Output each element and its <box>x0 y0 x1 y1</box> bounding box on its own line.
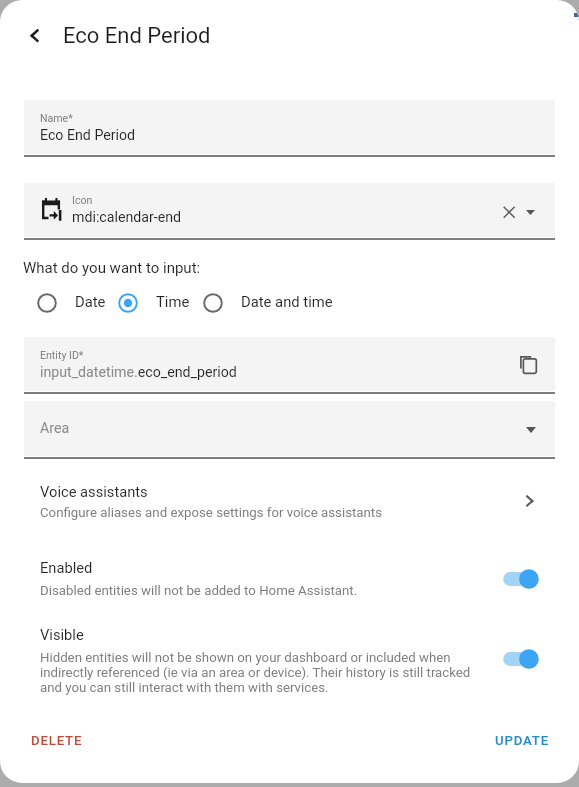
staticText: Disabled entities will not be added to H… <box>40 583 358 599</box>
button[interactable]: Back <box>18 20 46 48</box>
button[interactable] <box>24 183 555 237</box>
staticText: DELETE <box>31 733 83 748</box>
button[interactable]: Toggle Enabled <box>500 566 542 592</box>
staticText: What do you want to input: <box>23 259 201 277</box>
staticText: Time <box>156 293 190 310</box>
button[interactable] <box>0 618 579 698</box>
button[interactable]: Toggle Visible <box>500 646 542 672</box>
staticText: Name* <box>40 112 73 124</box>
staticText: indirectly referenced (ie via an area or… <box>40 665 471 681</box>
button[interactable]: Clear icon <box>495 199 523 227</box>
button[interactable]: Copy entity ID <box>506 346 538 378</box>
staticText: Voice assistants <box>40 483 148 500</box>
button[interactable] <box>485 727 557 761</box>
button[interactable] <box>24 100 555 154</box>
staticText: Enabled <box>40 559 93 576</box>
button[interactable] <box>20 727 90 761</box>
button[interactable]: Select icon <box>512 199 540 227</box>
button[interactable] <box>194 284 232 322</box>
staticText: Eco End Period <box>40 127 136 144</box>
button[interactable] <box>109 284 147 322</box>
button[interactable] <box>28 284 66 322</box>
button[interactable] <box>0 552 579 602</box>
staticText: Date <box>75 293 106 310</box>
staticText: and you can still interact with them wit… <box>40 680 329 696</box>
button[interactable]: Select area <box>512 416 540 444</box>
staticText: Entity ID* <box>40 349 84 361</box>
staticText: UPDATE <box>495 733 549 748</box>
staticText: Hidden entities will not be shown on you… <box>40 650 451 666</box>
button[interactable] <box>24 337 555 391</box>
staticText: Visible <box>40 626 84 643</box>
staticText: Date and time <box>241 293 333 310</box>
button[interactable] <box>0 474 579 526</box>
staticText: Area <box>40 420 70 437</box>
staticText: Eco End Period <box>63 23 211 49</box>
staticText: Configure aliases and expose settings fo… <box>40 505 383 521</box>
button[interactable] <box>24 401 555 456</box>
staticText: input_datetime.eco_end_period <box>40 364 237 381</box>
staticText: mdi:calendar-end <box>72 209 182 226</box>
staticText: Icon <box>72 194 93 206</box>
